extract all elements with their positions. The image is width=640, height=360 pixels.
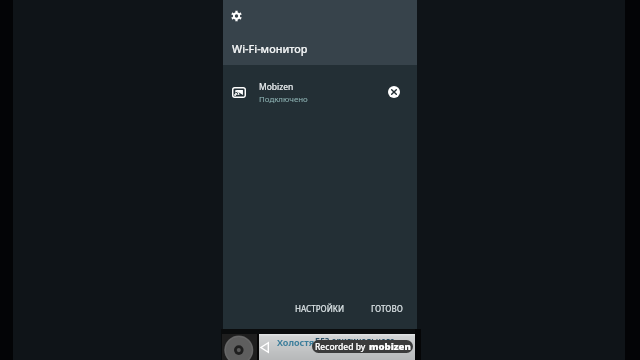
staticText: БЕЗ оригинального: [315, 335, 395, 346]
staticText: НАСТРОЙКИ: [295, 303, 345, 314]
staticText: Recorded by: [315, 341, 366, 353]
staticText: Mobizen: [259, 81, 294, 93]
button[interactable]: Disconnect: [384, 82, 404, 102]
staticText: Wi-Fi-монитор: [232, 41, 308, 56]
button[interactable]: ГОТОВО: [366, 299, 408, 318]
staticText: Холостяк: [277, 336, 320, 348]
button[interactable]: Settings: [225, 5, 247, 27]
staticText: mobizen: [369, 340, 411, 353]
staticText: ГОТОВО: [371, 303, 403, 314]
button[interactable]: Холостяк: [259, 334, 415, 360]
button[interactable]: Mobizen: [223, 73, 417, 110]
staticText: Подключено: [259, 94, 308, 105]
button[interactable]: НАСТРОЙКИ: [290, 299, 350, 318]
